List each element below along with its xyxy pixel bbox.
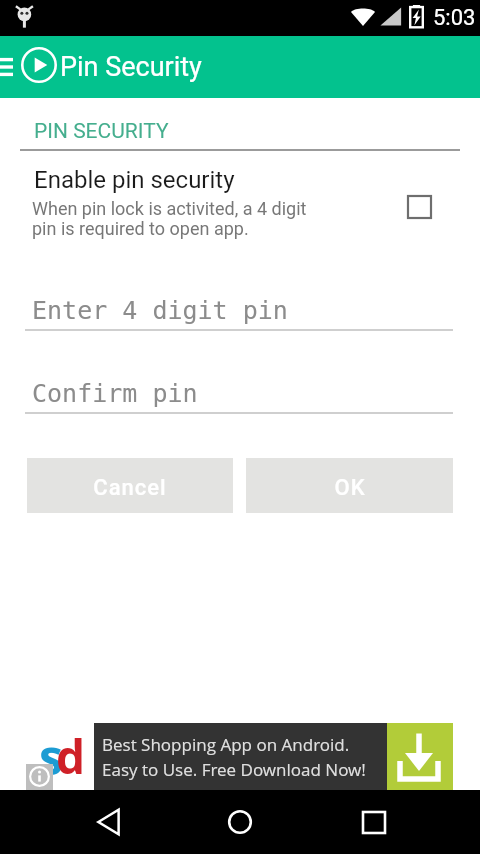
button[interactable]: Confirm pin xyxy=(25,373,453,418)
button[interactable]: Best Shopping App on Android. xyxy=(94,723,387,790)
staticText: OK xyxy=(334,475,366,501)
button[interactable]: Back xyxy=(76,790,140,854)
button[interactable]: Download xyxy=(387,723,453,790)
staticText: Pin Security xyxy=(60,51,202,83)
button[interactable]: Home xyxy=(208,790,272,854)
staticText: Best Shopping App on Android. xyxy=(102,733,350,756)
staticText: 5:03 xyxy=(433,5,476,31)
staticText: PIN SECURITY xyxy=(34,119,169,144)
button[interactable]: Enable pin security xyxy=(0,160,480,240)
staticText: d xyxy=(56,725,86,788)
staticText: s xyxy=(39,724,63,789)
button[interactable]: Menu xyxy=(0,47,14,87)
button[interactable]: Play xyxy=(18,44,60,86)
staticText: Enter 4 digit pin xyxy=(32,296,288,325)
staticText: Easy to Use. Free Download Now! xyxy=(102,758,366,781)
staticText: Enable pin security xyxy=(34,166,235,194)
button[interactable]: Recent apps xyxy=(342,790,406,854)
staticText: Confirm pin xyxy=(32,379,198,408)
staticText: When pin lock is activited, a 4 digit pi… xyxy=(32,198,307,239)
button[interactable]: Cancel xyxy=(27,458,233,513)
button[interactable]: OK xyxy=(246,458,453,513)
button[interactable]: Enable pin security xyxy=(400,188,438,226)
staticText: Cancel xyxy=(93,475,167,501)
button[interactable]: Enter 4 digit pin xyxy=(25,290,453,335)
